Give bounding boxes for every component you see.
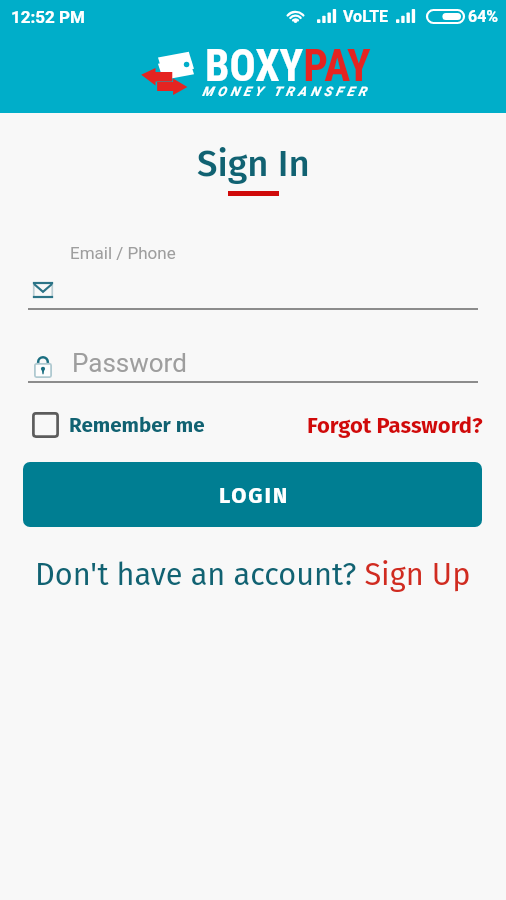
staticText: MONEY TRANSFER (202, 84, 371, 99)
staticText: Email / Phone (70, 243, 176, 263)
button[interactable]: Forgot Password? (307, 412, 483, 438)
button[interactable]: LOGIN (23, 462, 482, 527)
staticText: 64% (468, 7, 499, 26)
staticText: 12:52 PM (11, 7, 85, 27)
staticText: VoLTE (343, 7, 389, 26)
staticText: Sign In (197, 142, 310, 186)
other: BoxyPay (136, 44, 305, 95)
staticText: Password (72, 348, 187, 378)
staticText: Don't have an account? Sign Up (35, 556, 471, 593)
staticText: BOXYPAY (205, 41, 371, 92)
button[interactable]: Don't have an account? Sign Up (35, 556, 471, 593)
staticText: LOGIN (219, 482, 290, 508)
button[interactable]: Remember me (32, 412, 209, 438)
staticText: Remember me (69, 413, 205, 438)
staticText: Forgot Password? (307, 412, 483, 438)
